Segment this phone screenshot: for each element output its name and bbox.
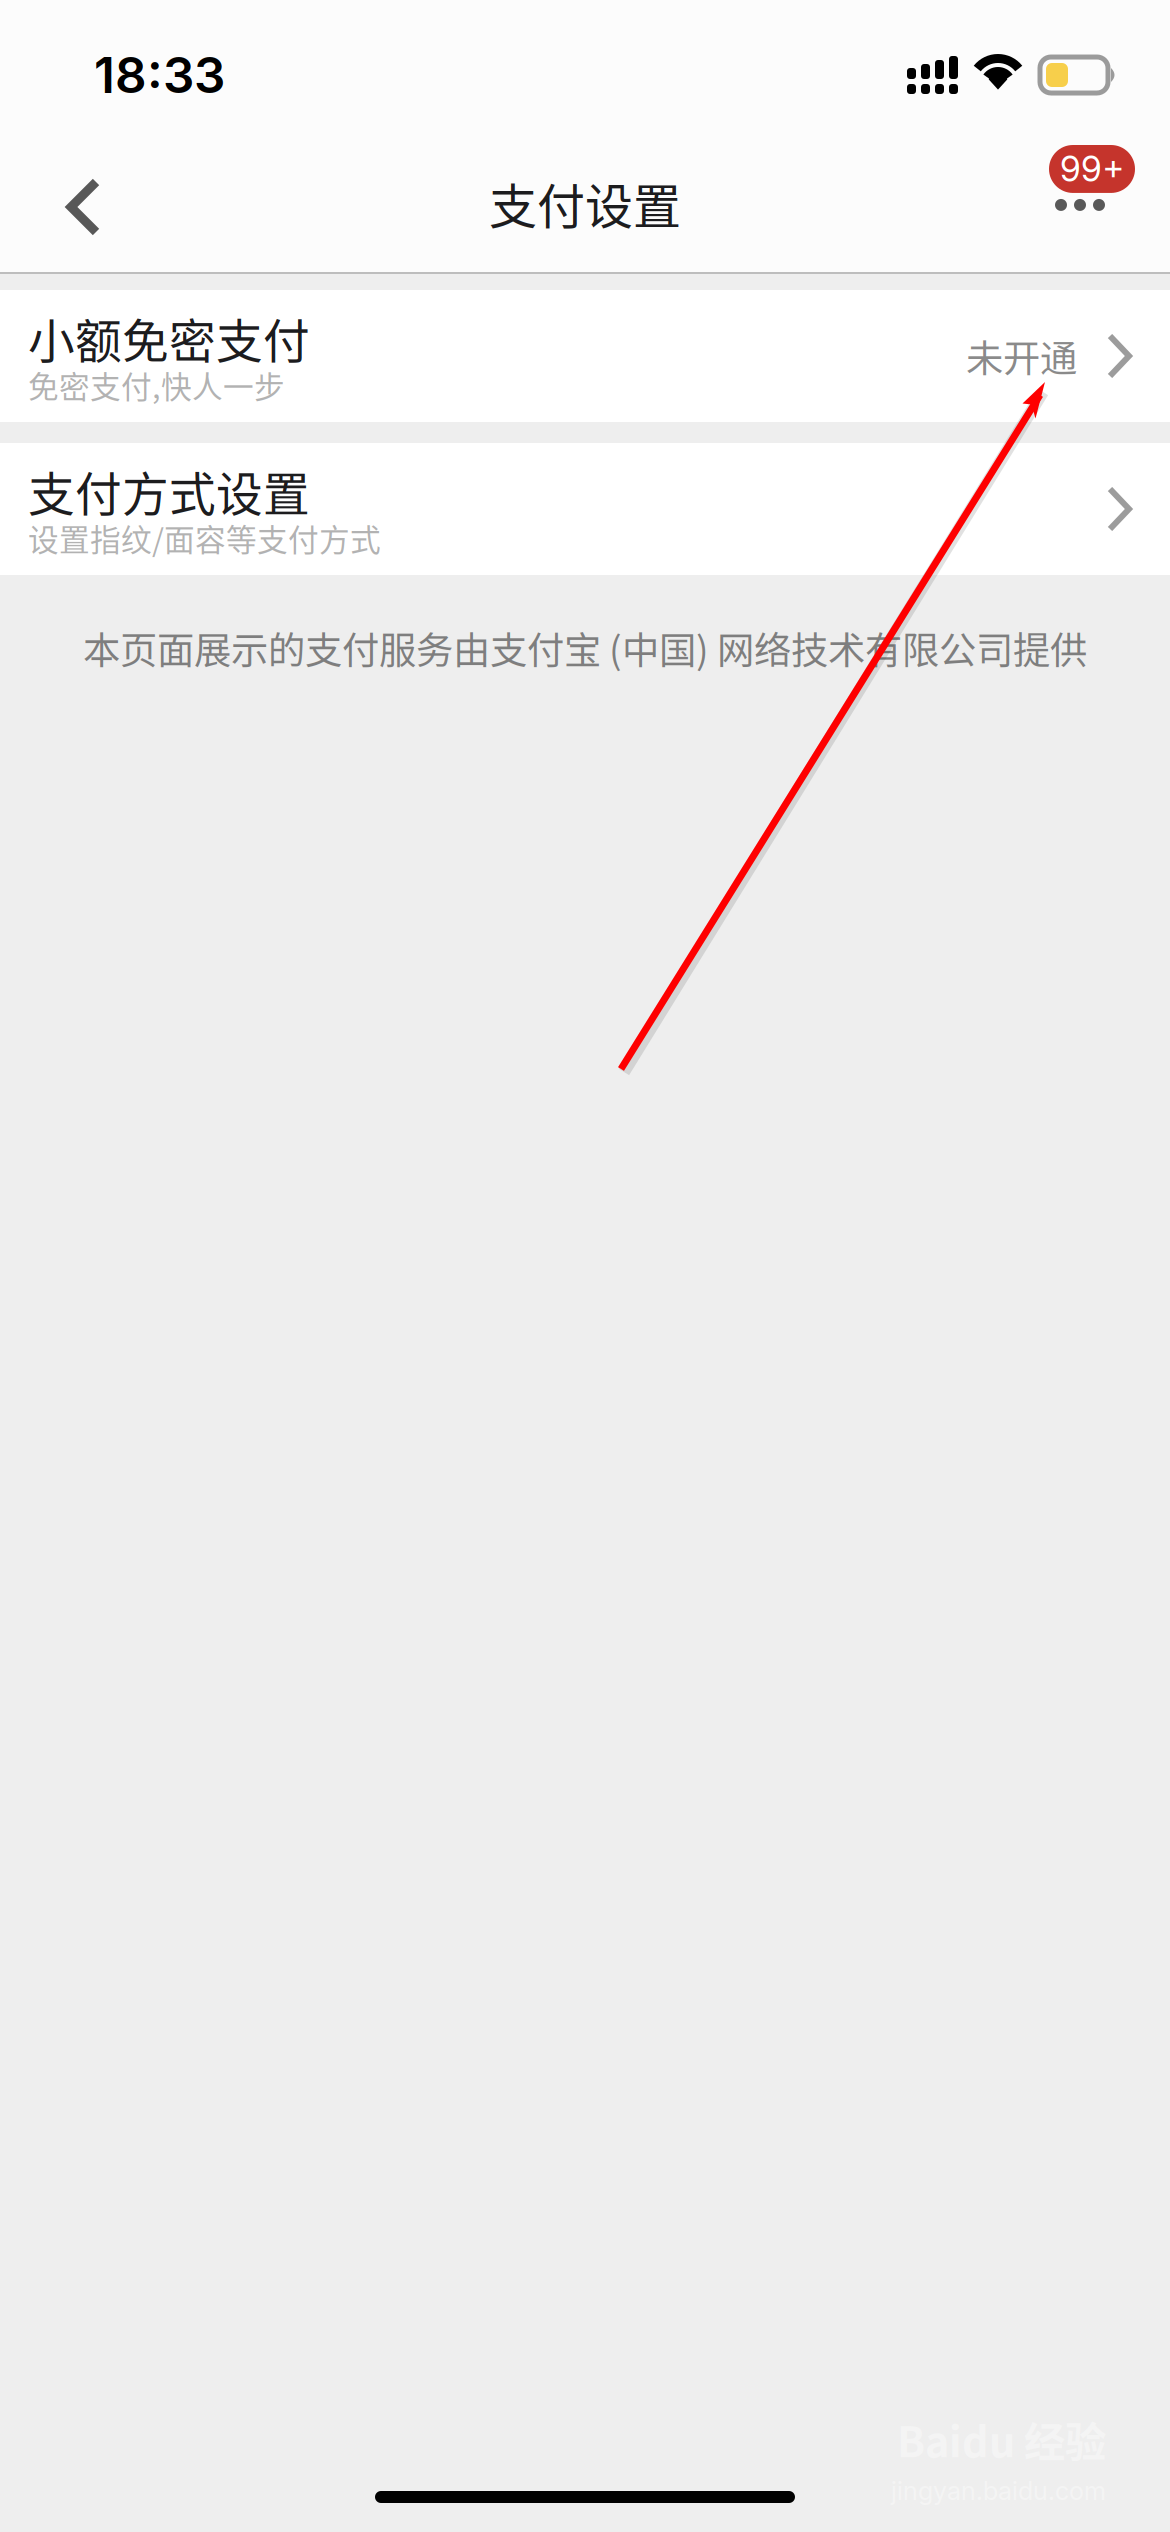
staticText: 未开通 bbox=[966, 329, 1077, 383]
staticText: 18:33 bbox=[94, 45, 225, 105]
staticText: 设置指纹/面容等支付方式 bbox=[28, 516, 381, 560]
staticText: 本页面展示的支付服务由支付宝 (中国) 网络技术有限公司提供 bbox=[83, 621, 1087, 675]
button[interactable]: Back bbox=[0, 142, 164, 272]
button[interactable]: 支付方式设置 bbox=[0, 443, 1170, 575]
staticText: 小额免密支付 bbox=[28, 304, 310, 372]
button[interactable]: More options bbox=[994, 142, 1170, 272]
staticText: 99+ bbox=[1060, 148, 1124, 190]
staticText: 支付方式设置 bbox=[28, 457, 310, 525]
staticText: 支付设置 bbox=[489, 168, 681, 238]
staticText: 免密支付,快人一步 bbox=[28, 363, 285, 407]
button[interactable]: 小额免密支付 bbox=[0, 290, 1170, 422]
